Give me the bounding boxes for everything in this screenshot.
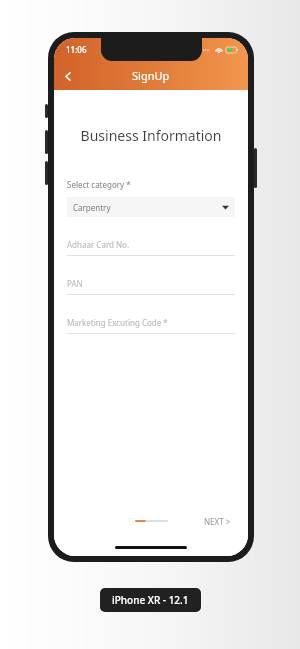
- button[interactable]: Carpentry: [67, 197, 235, 217]
- staticText: Marketing Excuting Code *: [67, 317, 168, 328]
- staticText: Carpentry: [73, 202, 222, 213]
- button[interactable]: Marketing Excuting Code *: [67, 317, 235, 334]
- button[interactable]: NEXT >: [200, 512, 235, 531]
- staticText: SignUp: [132, 68, 170, 83]
- staticText: iPhone XR - 12.1: [112, 593, 189, 607]
- staticText: NEXT >: [204, 516, 231, 527]
- staticText: 11:06: [66, 44, 87, 55]
- button[interactable]: PAN: [67, 278, 235, 295]
- staticText: Select category *: [67, 179, 131, 190]
- staticText: PAN: [67, 278, 83, 289]
- button[interactable]: Adhaar Card No.: [67, 239, 235, 256]
- button[interactable]: Back: [54, 62, 82, 90]
- staticText: Adhaar Card No.: [67, 239, 130, 250]
- staticText: Business Information: [67, 126, 235, 145]
